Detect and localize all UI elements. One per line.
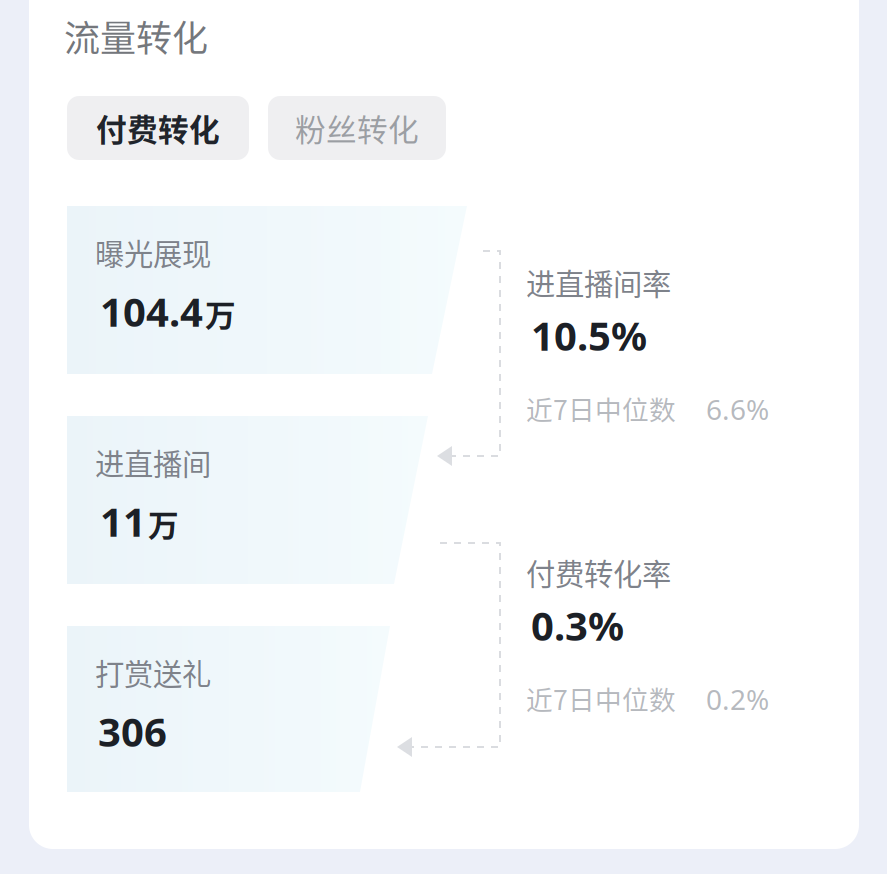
staticText: 0.2% [706,680,769,718]
staticText: 流量转化 [64,10,208,62]
staticText: 进直播间率 [526,261,671,303]
staticText: 曝光展现 [95,231,211,273]
staticText: 306 [98,704,167,758]
staticText: 近7日中位数 [526,389,676,428]
staticText: 11 [100,494,146,548]
staticText: 万 [148,501,179,546]
staticText: 进直播间 [95,441,211,483]
staticText: 付费转化 [96,106,220,150]
staticText: 付费转化率 [526,551,671,593]
staticText: 104.4 [100,284,203,338]
staticText: 打赏送礼 [95,651,211,693]
staticText: 0.3% [531,598,624,652]
staticText: 万 [205,291,236,336]
staticText: 10.5% [531,308,647,362]
staticText: 近7日中位数 [526,679,676,718]
staticText: 6.6% [706,390,769,428]
button[interactable]: 粉丝转化 [268,96,446,160]
button[interactable]: 付费转化 [67,96,249,160]
staticText: 粉丝转化 [295,106,419,150]
